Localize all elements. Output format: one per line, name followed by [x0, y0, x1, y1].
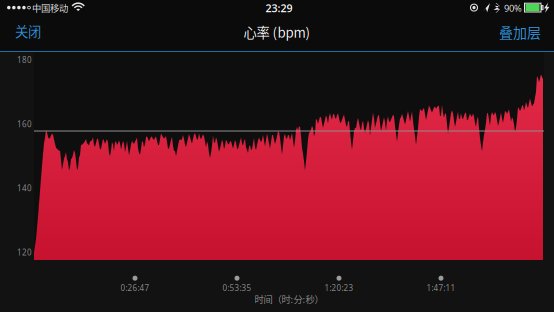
staticText: 120: [17, 247, 32, 258]
staticText: 1:20:23: [324, 283, 353, 293]
staticText: 时间（时:分:秒）: [254, 292, 323, 306]
staticText: 心率 (bpm): [243, 22, 310, 42]
staticText: 140: [17, 183, 32, 193]
button[interactable]: 叠加层: [0, 20, 48, 52]
staticText: 0:53:35: [222, 283, 251, 293]
staticText: 1:47:11: [426, 283, 455, 293]
staticText: 160: [17, 119, 32, 129]
staticText: 中国移动: [32, 1, 68, 14]
button[interactable]: 关闭: [0, 20, 44, 52]
staticText: 0:26:47: [120, 283, 149, 293]
staticText: 关闭: [15, 21, 41, 41]
staticText: 叠加层: [499, 22, 541, 42]
staticText: 180: [17, 55, 32, 65]
staticText: 23:29: [265, 1, 292, 15]
staticText: 90%: [504, 2, 522, 14]
